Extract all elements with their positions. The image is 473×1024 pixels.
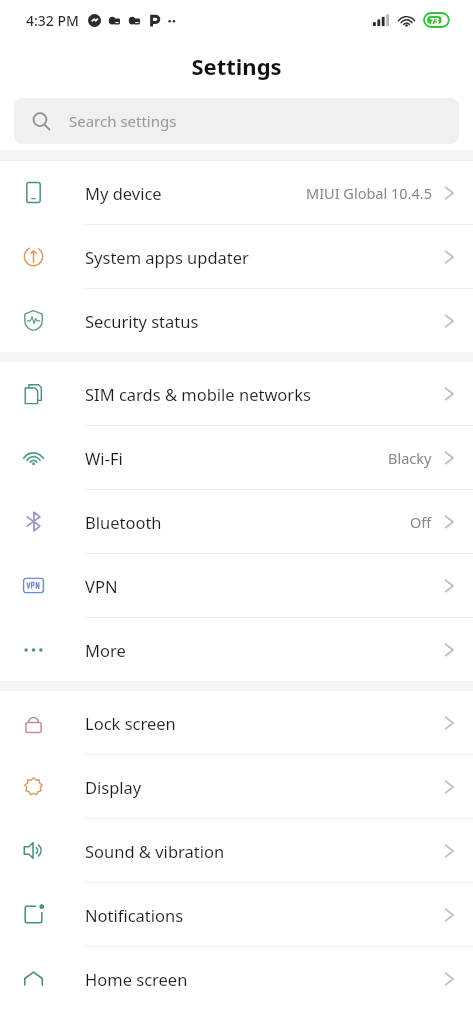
button[interactable]: Home screen	[0, 947, 473, 1010]
button[interactable]: Display	[0, 755, 473, 818]
staticText: Notifications	[85, 904, 184, 926]
staticText: Wi-Fi	[85, 447, 123, 469]
staticText: VPN	[85, 575, 118, 597]
staticText: Settings	[191, 51, 282, 81]
button[interactable]: More	[0, 618, 473, 681]
other: Wi-Fi	[22, 446, 45, 469]
staticText: System apps updater	[85, 246, 249, 268]
other: Notifications	[22, 903, 45, 926]
staticText: SIM cards & mobile networks	[85, 383, 311, 405]
other: SIM cards and mobile networks	[22, 382, 45, 405]
staticText: Bluetooth	[85, 511, 162, 533]
button[interactable]: SIM cards and mobile networks	[0, 362, 473, 425]
staticText: 73	[430, 15, 440, 26]
other: Sound and vibration	[22, 839, 45, 862]
other: System apps updater	[22, 245, 45, 268]
staticText: Off	[410, 512, 432, 532]
other: VPN	[22, 574, 45, 597]
staticText: Security status	[85, 310, 199, 332]
staticText: Lock screen	[85, 712, 176, 734]
staticText: My device	[85, 182, 162, 204]
button[interactable]: System apps updater	[0, 225, 473, 288]
staticText: 4:32 PM	[26, 11, 79, 30]
other: Security status	[22, 309, 45, 332]
other: Display	[22, 775, 45, 798]
staticText: MIUI Global 10.4.5	[306, 183, 432, 203]
button[interactable]: My device	[0, 161, 473, 224]
button[interactable]: Security status	[0, 289, 473, 352]
button[interactable]: VPN	[0, 554, 473, 617]
staticText: Sound & vibration	[85, 840, 225, 862]
staticText: Search settings	[69, 111, 177, 131]
other: My device	[22, 181, 45, 204]
button[interactable]: Lock screen	[0, 691, 473, 754]
other: Bluetooth	[22, 510, 45, 533]
staticText: Blacky	[388, 448, 432, 468]
staticText: Display	[85, 776, 142, 798]
staticText: Home screen	[85, 968, 188, 990]
button[interactable]: Wi-Fi	[0, 426, 473, 489]
button[interactable]: Search settings	[14, 98, 459, 144]
button[interactable]: Bluetooth	[0, 490, 473, 553]
other: Home screen	[22, 967, 45, 990]
other: More	[22, 638, 45, 661]
button[interactable]: Notifications	[0, 883, 473, 946]
staticText: More	[85, 639, 126, 661]
other: Lock screen	[22, 711, 45, 734]
button[interactable]: Sound and vibration	[0, 819, 473, 882]
